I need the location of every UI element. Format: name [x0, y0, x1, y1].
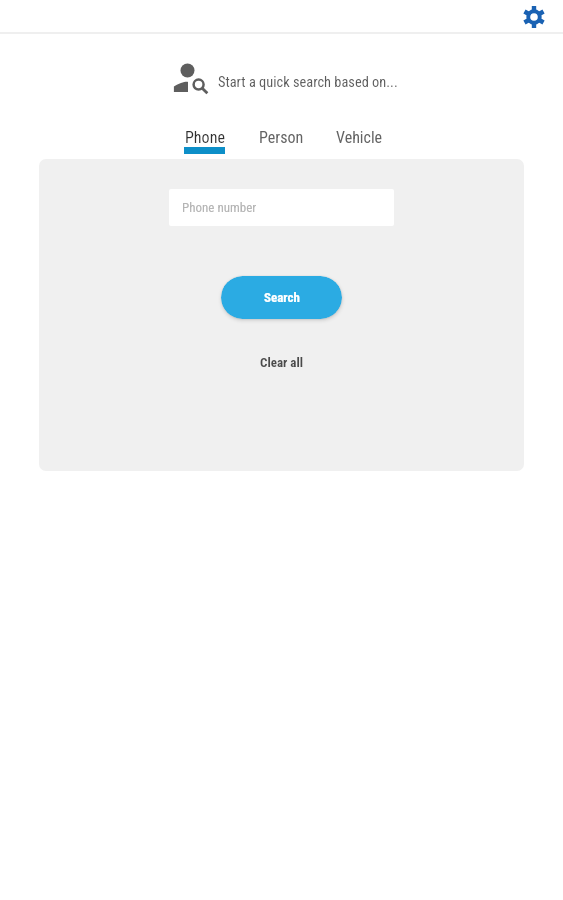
staticText: Start a quick search based on...: [218, 74, 398, 91]
button[interactable]: Vehicle: [336, 128, 383, 147]
staticText: Phone number: [182, 200, 257, 215]
button[interactable]: Search: [221, 276, 342, 319]
button[interactable]: Phone number: [169, 189, 394, 226]
staticText: Clear all: [260, 355, 304, 370]
staticText: Vehicle: [336, 128, 383, 147]
staticText: Person: [259, 128, 304, 147]
button[interactable]: Person: [259, 128, 304, 147]
button[interactable]: Phone: [184, 128, 225, 154]
button[interactable]: Clear all: [251, 348, 313, 376]
staticText: Phone: [185, 128, 225, 147]
button[interactable]: Settings: [520, 3, 548, 31]
staticText: Search: [264, 290, 300, 305]
